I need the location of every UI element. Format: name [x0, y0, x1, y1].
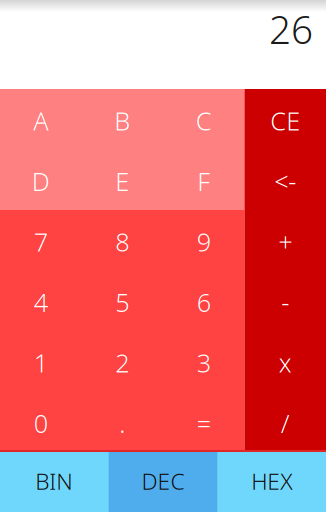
staticText: 1	[34, 346, 48, 379]
button[interactable]: 7	[0, 211, 81, 272]
button[interactable]: 9	[163, 211, 244, 272]
button[interactable]: A	[0, 90, 81, 151]
staticText: 3	[197, 346, 211, 379]
staticText: <-	[274, 164, 296, 198]
staticText: 26	[269, 3, 313, 55]
staticText: DEC	[141, 466, 184, 496]
staticText: 9	[197, 225, 211, 258]
button[interactable]: 6	[163, 272, 244, 332]
staticText: B	[114, 104, 130, 137]
button[interactable]: 8	[81, 211, 163, 272]
staticText: /	[281, 406, 290, 440]
button[interactable]: F	[163, 151, 244, 211]
staticText: E	[115, 164, 129, 198]
button[interactable]: x	[244, 332, 326, 393]
button[interactable]: 5	[81, 272, 163, 332]
staticText: A	[33, 104, 48, 137]
staticText: -	[281, 285, 289, 319]
button[interactable]: B	[81, 90, 163, 151]
button[interactable]: +	[244, 211, 326, 272]
staticText: +	[278, 225, 292, 258]
staticText: 4	[34, 285, 48, 319]
staticText: 2	[115, 346, 129, 379]
staticText: F	[197, 164, 210, 198]
staticText: C	[196, 104, 212, 137]
button[interactable]: -	[244, 272, 326, 332]
staticText: 7	[34, 225, 48, 258]
button[interactable]: 3	[163, 332, 244, 393]
button[interactable]: 0	[0, 393, 81, 453]
staticText: 8	[115, 225, 129, 258]
staticText: CE	[270, 104, 300, 137]
button[interactable]: 4	[0, 272, 81, 332]
button[interactable]: /	[244, 393, 326, 453]
staticText: 0	[34, 406, 48, 440]
button[interactable]: 1	[0, 332, 81, 393]
button[interactable]: CE	[244, 90, 326, 151]
button[interactable]: E	[81, 151, 163, 211]
button[interactable]: 2	[81, 332, 163, 393]
staticText: =	[197, 406, 211, 440]
staticText: 6	[197, 285, 211, 319]
staticText: HEX	[251, 466, 292, 496]
staticText: .	[119, 406, 125, 440]
staticText: D	[32, 164, 50, 198]
button[interactable]: <-	[244, 151, 326, 211]
button[interactable]: BIN	[0, 451, 109, 511]
staticText: BIN	[35, 466, 73, 496]
staticText: 5	[115, 285, 129, 319]
button[interactable]: C	[163, 90, 244, 151]
staticText: x	[279, 346, 292, 379]
button[interactable]: =	[163, 393, 244, 453]
button[interactable]: .	[81, 393, 163, 453]
button[interactable]: HEX	[217, 451, 326, 511]
button[interactable]: DEC	[109, 451, 217, 511]
button[interactable]: D	[0, 151, 81, 211]
